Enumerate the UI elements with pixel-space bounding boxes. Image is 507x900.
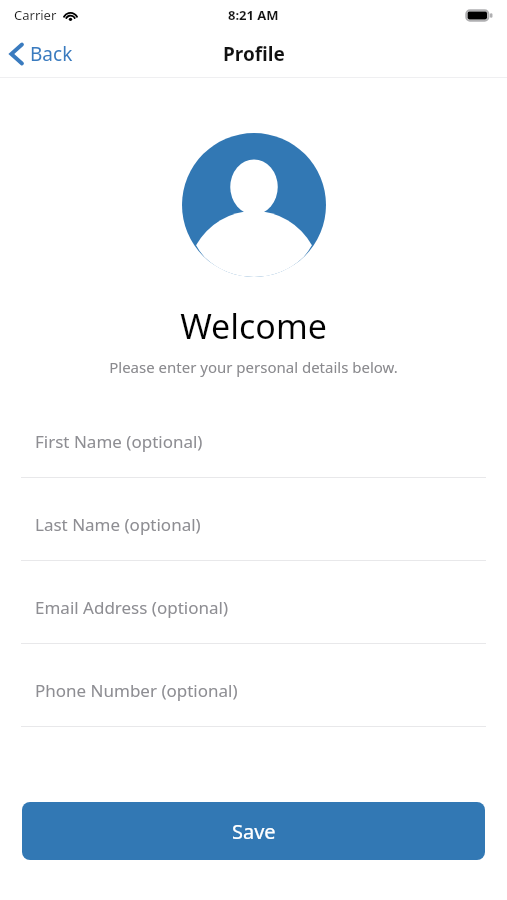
staticText: First Name (optional) — [35, 430, 203, 453]
staticText: Please enter your personal details below… — [0, 357, 507, 377]
button[interactable]: Back — [0, 35, 85, 73]
other: Profile avatar — [182, 133, 326, 277]
button[interactable]: Last Name (optional) — [0, 488, 507, 571]
staticText: Back — [30, 41, 73, 67]
staticText: 8:21 AM — [228, 6, 279, 24]
staticText: Profile — [223, 41, 285, 67]
staticText: Phone Number (optional) — [35, 679, 238, 702]
button[interactable]: Phone Number (optional) — [0, 654, 507, 737]
staticText: Carrier — [14, 6, 57, 24]
other: Battery — [465, 9, 493, 22]
staticText: Last Name (optional) — [35, 513, 201, 536]
button[interactable]: First Name (optional) — [0, 405, 507, 488]
other: Back — [10, 43, 23, 65]
button[interactable]: Save — [22, 802, 485, 860]
button[interactable]: Email Address (optional) — [0, 571, 507, 654]
staticText: Email Address (optional) — [35, 596, 229, 619]
staticText: Welcome — [0, 303, 507, 349]
staticText: Save — [232, 818, 276, 845]
